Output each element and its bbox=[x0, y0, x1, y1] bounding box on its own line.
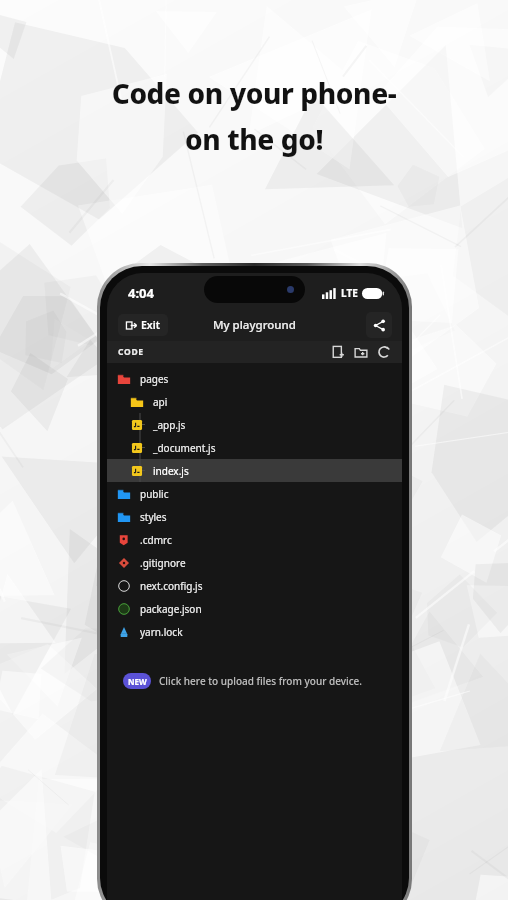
button[interactable]: Share bbox=[366, 312, 392, 338]
button[interactable]: next.config.js bbox=[107, 574, 402, 597]
staticText: LTE bbox=[341, 286, 358, 300]
button[interactable]: pages bbox=[107, 367, 402, 390]
button[interactable]: NEW bbox=[123, 673, 363, 689]
staticText: pages bbox=[140, 372, 169, 386]
button[interactable]: _app.js bbox=[107, 413, 402, 436]
button[interactable]: Exit bbox=[118, 314, 168, 336]
staticText: 4:04 bbox=[128, 284, 154, 302]
button[interactable]: .cdmrc bbox=[107, 528, 402, 551]
button[interactable]: New file bbox=[331, 345, 345, 359]
staticText: on the go! bbox=[28, 120, 480, 158]
staticText: Exit bbox=[141, 318, 160, 332]
button[interactable]: styles bbox=[107, 505, 402, 528]
staticText: _document.js bbox=[153, 441, 216, 455]
staticText: CODE bbox=[118, 346, 144, 358]
staticText: index.js bbox=[153, 464, 189, 478]
staticText: .gitignore bbox=[140, 556, 186, 570]
staticText: next.config.js bbox=[140, 579, 203, 593]
staticText: .cdmrc bbox=[140, 533, 172, 547]
staticText: _app.js bbox=[153, 418, 186, 432]
staticText: styles bbox=[140, 510, 167, 524]
button[interactable]: New folder bbox=[354, 345, 368, 359]
staticText: yarn.lock bbox=[140, 625, 183, 639]
staticText: My playground bbox=[213, 317, 296, 333]
staticText: NEW bbox=[128, 676, 147, 687]
staticText: api bbox=[153, 395, 168, 409]
button[interactable]: Refresh bbox=[377, 345, 391, 359]
button[interactable]: _document.js bbox=[107, 436, 402, 459]
staticText: public bbox=[140, 487, 169, 501]
staticText: Click here to upload files from your dev… bbox=[159, 674, 363, 688]
button[interactable]: api bbox=[107, 390, 402, 413]
button[interactable]: index.js bbox=[107, 459, 402, 482]
button[interactable]: yarn.lock bbox=[107, 620, 402, 643]
staticText: package.json bbox=[140, 602, 202, 616]
button[interactable]: public bbox=[107, 482, 402, 505]
staticText: Code on your phone- bbox=[28, 74, 480, 112]
button[interactable]: .gitignore bbox=[107, 551, 402, 574]
button[interactable]: package.json bbox=[107, 597, 402, 620]
